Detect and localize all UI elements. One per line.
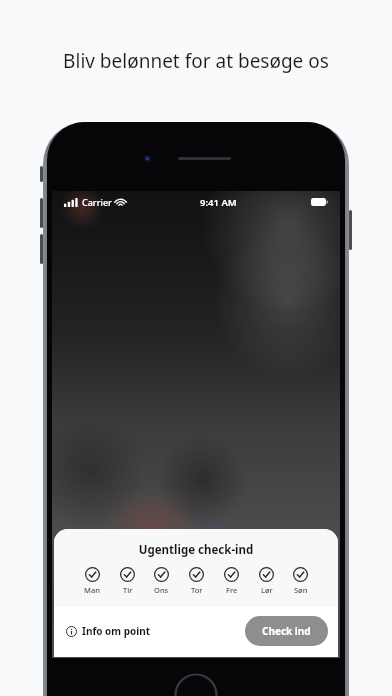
staticText: Tor — [191, 585, 203, 595]
staticText: Ons — [154, 585, 169, 595]
staticText: Check ind — [262, 624, 311, 638]
button[interactable]: Tor — [187, 567, 206, 595]
button[interactable]: Info om point — [66, 624, 151, 638]
staticText: Fre — [226, 585, 238, 595]
staticText: Bliv belønnet for at besøge os — [0, 48, 392, 74]
button[interactable]: Tir — [118, 567, 137, 595]
button[interactable]: Lør — [257, 567, 276, 595]
button[interactable]: Fre — [222, 567, 241, 595]
staticText: Carrier — [82, 196, 112, 208]
staticText: Man — [84, 585, 100, 595]
button[interactable]: Ons — [152, 567, 171, 595]
button[interactable]: Check ind — [245, 616, 328, 646]
staticText: Tir — [123, 585, 133, 595]
button[interactable]: Søn — [291, 567, 310, 595]
staticText: Søn — [294, 585, 308, 595]
staticText: Ugentlige check-ind — [54, 542, 338, 558]
staticText: 9:41 AM — [200, 196, 237, 209]
staticText: Info om point — [82, 624, 151, 638]
button[interactable]: Man — [82, 567, 102, 595]
staticText: Lør — [261, 585, 273, 595]
